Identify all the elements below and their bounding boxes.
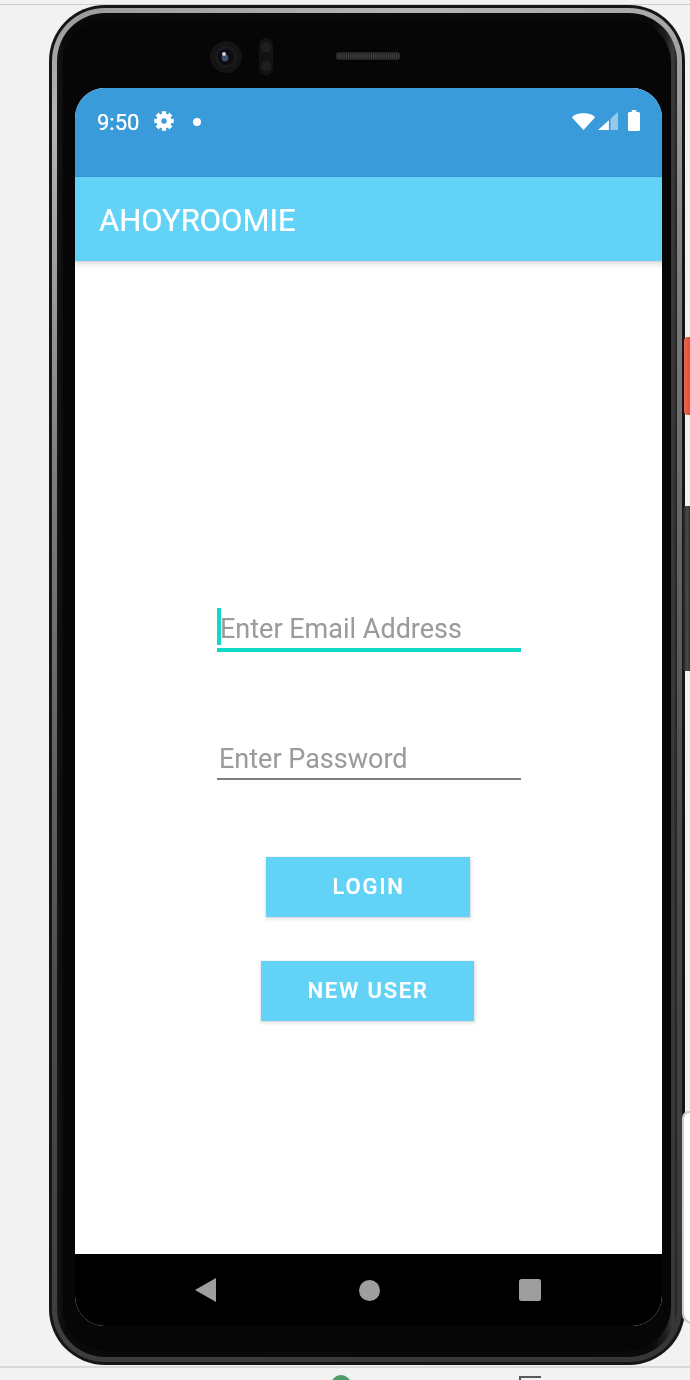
staticText: Enter Email Address	[220, 613, 462, 645]
button[interactable]: Back	[156, 1254, 254, 1326]
staticText: LOGIN	[332, 874, 405, 900]
staticText: NEW USER	[307, 978, 429, 1004]
button[interactable]: Enter Password	[217, 732, 521, 788]
button[interactable]: Enter Email Address	[217, 602, 521, 658]
staticText: Enter Password	[219, 743, 408, 775]
button[interactable]: Recent apps	[481, 1254, 579, 1326]
staticText: AHOYROOMIE	[99, 202, 296, 238]
staticText: 9:50	[97, 110, 140, 136]
button[interactable]: LOGIN	[266, 857, 470, 917]
button[interactable]: NEW USER	[261, 961, 474, 1021]
button[interactable]: Home	[320, 1254, 418, 1326]
